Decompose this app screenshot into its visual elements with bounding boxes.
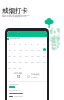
staticText: 20 — [37, 54, 40, 57]
staticText: 12 — [31, 48, 34, 51]
staticText: 29 — [8, 66, 11, 69]
button[interactable] — [9, 86, 15, 88]
button[interactable]: 戒烟打卡 — [2, 7, 28, 15]
staticText: 坚持天数 — [14, 72, 23, 75]
staticText: 18 — [25, 54, 28, 57]
staticText: 12 — [17, 75, 20, 79]
staticText: 23 — [13, 60, 16, 63]
staticText: 戒烟日历 — [9, 32, 21, 36]
staticText: 8 — [9, 48, 11, 51]
staticText: 10 — [19, 48, 22, 51]
staticText: 28 — [43, 60, 46, 63]
staticText: 1 — [9, 42, 11, 45]
staticText: 17 — [19, 54, 22, 57]
other: Tree — [44, 17, 54, 28]
staticText: 27 — [37, 60, 40, 63]
staticText: 3 — [19, 42, 21, 45]
staticText: 戒烟打卡 — [2, 7, 28, 15]
staticText: 21 — [43, 54, 46, 57]
staticText: 16 — [13, 54, 16, 57]
staticText: 5 — [31, 42, 33, 45]
staticText: 11 — [25, 48, 28, 51]
staticText: 13 — [37, 48, 40, 51]
staticText: 26 — [31, 60, 34, 63]
staticText: 7 — [43, 42, 45, 45]
staticText: 30 — [13, 66, 16, 69]
staticText: 25 — [25, 60, 28, 63]
staticText: 19 — [31, 54, 34, 57]
staticText: 31 — [19, 66, 22, 69]
staticText: 4 — [25, 42, 27, 45]
staticText: 22 — [8, 60, 11, 63]
staticText: 2 — [14, 42, 16, 45]
staticText: 2024年6月 — [10, 37, 21, 40]
staticText: ¥ 240 — [31, 76, 37, 79]
staticText: 每日坚持戒烟记录一 — [2, 14, 30, 18]
staticText: 24 — [19, 60, 22, 63]
staticText: 15 — [8, 54, 11, 57]
staticText: 9 — [14, 48, 16, 51]
button[interactable]: Refresh — [27, 75, 30, 78]
staticText: 6 — [37, 42, 39, 45]
staticText: 节省金额 — [31, 73, 40, 76]
